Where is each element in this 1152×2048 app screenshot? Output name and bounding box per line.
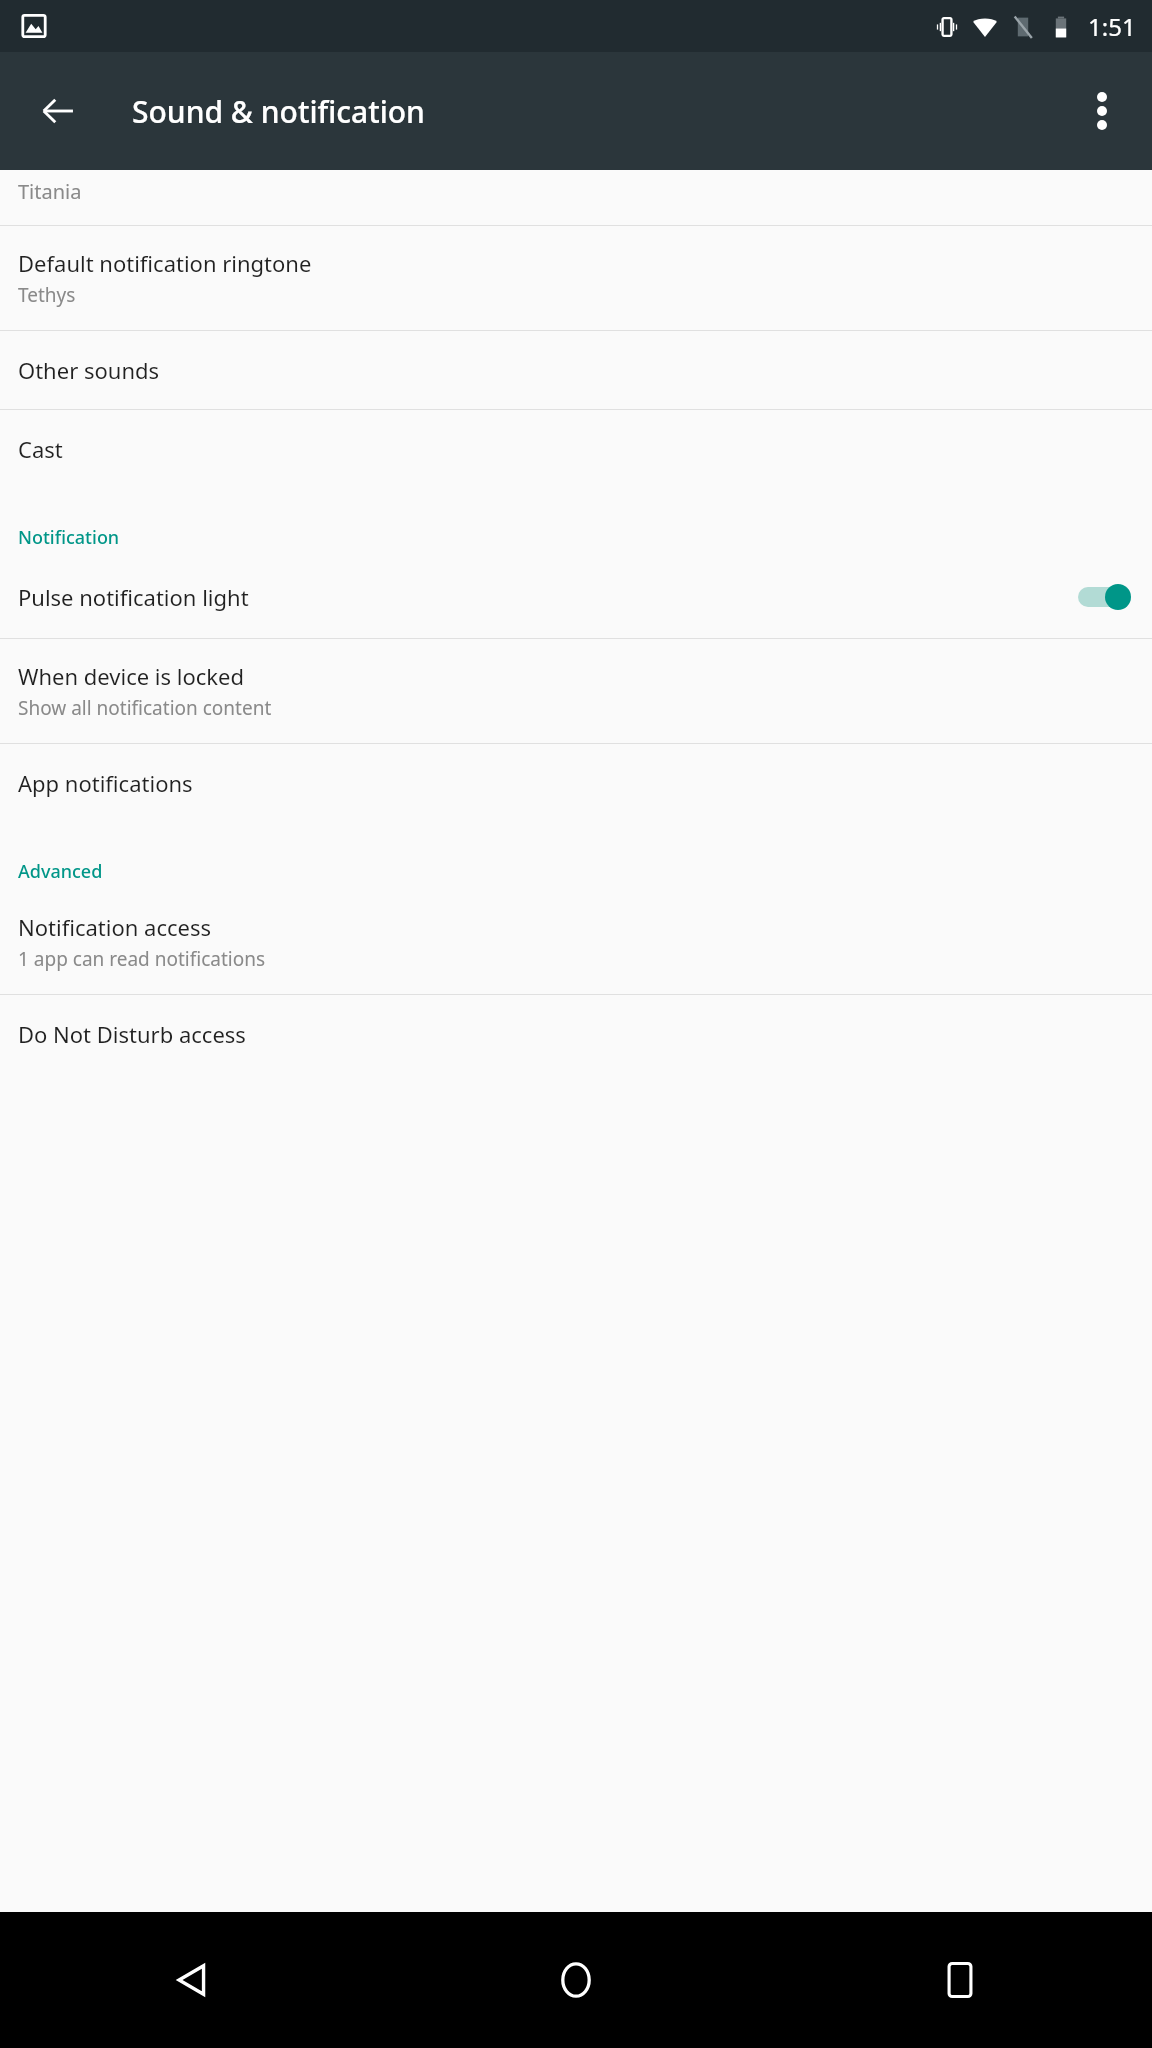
button[interactable]: Back — [34, 87, 82, 135]
button[interactable]: Do Not Disturb access — [0, 995, 1152, 1073]
button[interactable]: Titania — [0, 170, 1152, 225]
button[interactable]: Cast — [0, 410, 1152, 488]
staticText: Do Not Disturb access — [18, 1019, 246, 1049]
staticText: Notification — [18, 525, 120, 550]
button[interactable]: Notification access — [0, 890, 1152, 994]
button[interactable]: App notifications — [0, 744, 1152, 822]
staticText: Other sounds — [18, 355, 160, 385]
staticText: Sound & notification — [132, 91, 425, 132]
button[interactable]: Pulse notification light — [0, 556, 1152, 638]
staticText: Cast — [18, 434, 63, 464]
button[interactable]: Back — [152, 1940, 232, 2020]
staticText: 1 app can read notifications — [18, 946, 266, 972]
staticText: Notification access — [18, 912, 211, 942]
button[interactable]: Default notification ringtone — [0, 226, 1152, 330]
staticText: Advanced — [18, 859, 103, 884]
staticText: Titania — [18, 178, 82, 205]
staticText: When device is locked — [18, 661, 244, 691]
button[interactable]: When device is locked — [0, 639, 1152, 743]
button[interactable]: Home — [536, 1940, 616, 2020]
staticText: 1:51 — [1088, 10, 1136, 43]
staticText: Pulse notification light — [18, 582, 1078, 612]
button[interactable]: Other sounds — [0, 331, 1152, 409]
staticText: Tethys — [18, 282, 76, 308]
staticText: Show all notification content — [18, 695, 272, 721]
button[interactable]: Recent apps — [920, 1940, 1000, 2020]
button[interactable]: More options — [1078, 87, 1126, 135]
staticText: Default notification ringtone — [18, 248, 312, 278]
staticText: App notifications — [18, 768, 193, 798]
